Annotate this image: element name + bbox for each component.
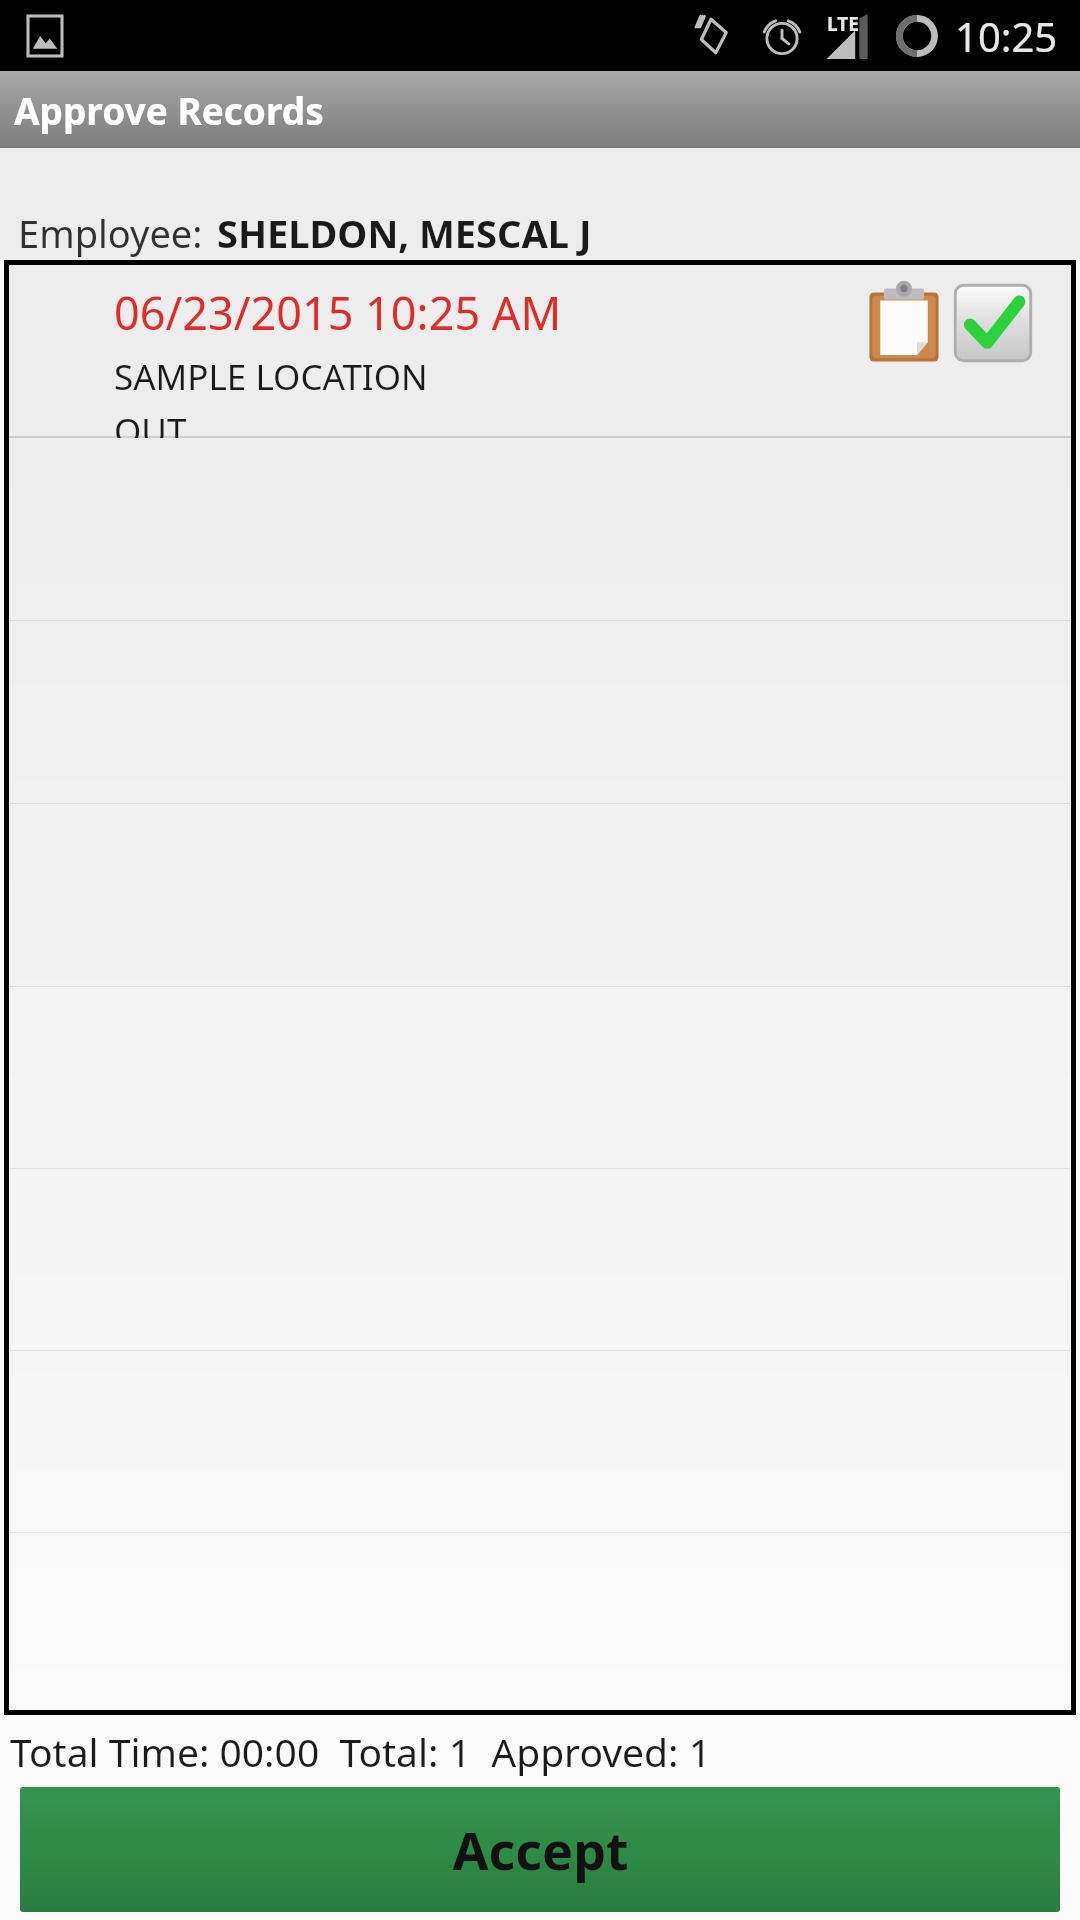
staticText: Total Time: 00:00 Total: 1 Approved: 1 <box>10 1725 711 1778</box>
button[interactable]: Approve record <box>952 282 1034 364</box>
staticText: 10:25 <box>955 9 1058 63</box>
button[interactable]: Accept <box>20 1787 1060 1912</box>
staticText: SAMPLE LOCATION <box>114 353 428 401</box>
staticText: Employee: <box>18 207 203 259</box>
button[interactable]: View record notes <box>868 283 940 363</box>
staticText: LTE <box>827 11 859 37</box>
staticText: Accept <box>452 1814 629 1885</box>
staticText: SHELDON, MESCAL J <box>217 207 592 259</box>
button[interactable]: 06/23/2015 10:25 AM <box>4 260 1076 438</box>
staticText: OUT <box>114 407 187 438</box>
staticText: 06/23/2015 10:25 AM <box>114 282 562 343</box>
staticText: Approve Records <box>14 85 324 135</box>
